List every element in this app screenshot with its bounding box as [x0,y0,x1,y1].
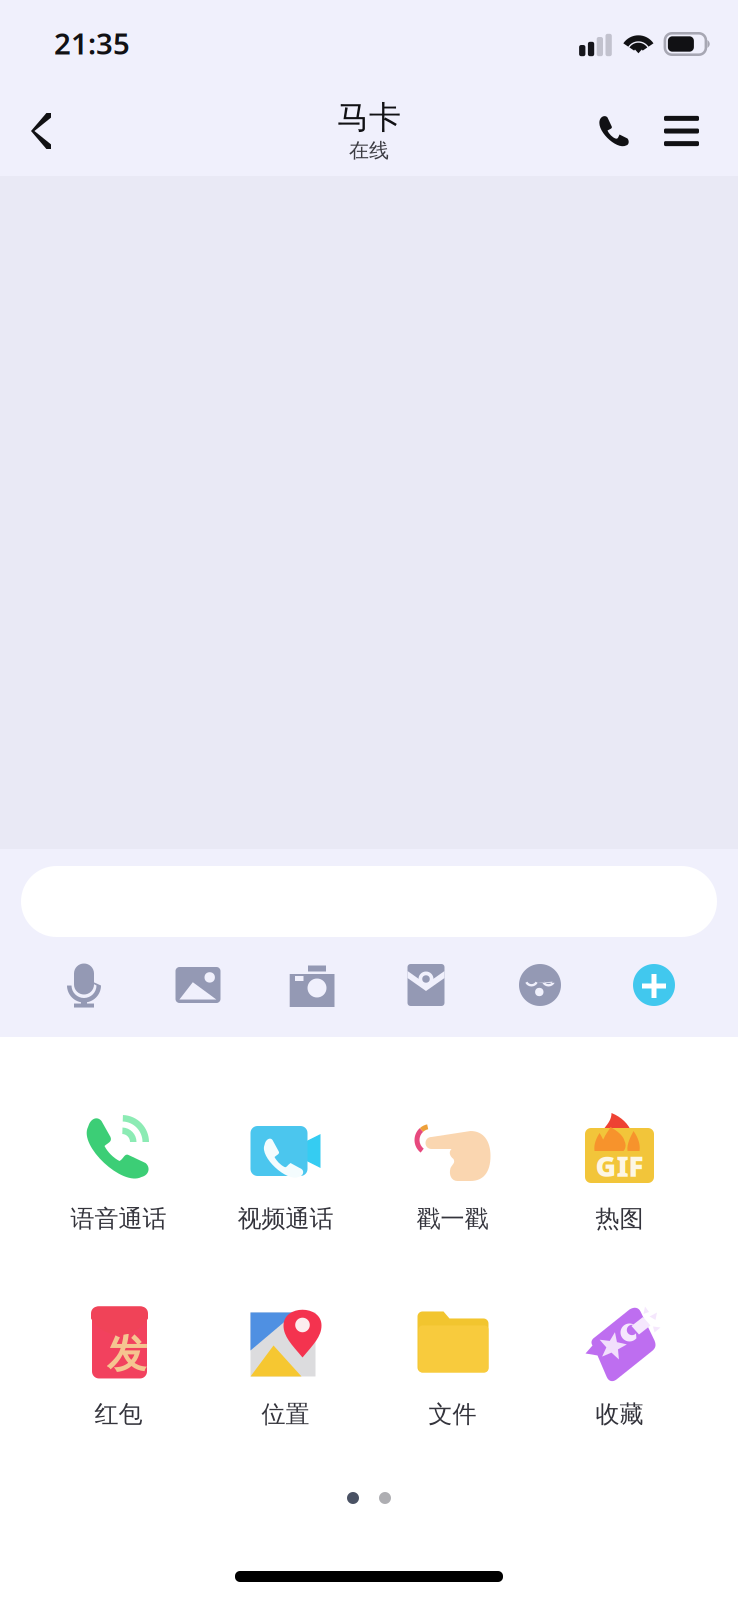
button[interactable]: 位置 [202,1306,369,1429]
staticText: 语音通话 [70,1204,166,1233]
button[interactable]: 收藏 [536,1306,703,1429]
staticText: 发 [107,1329,147,1378]
button[interactable]: 发 [35,1306,202,1429]
staticText: 收藏 [595,1399,643,1429]
staticText: GIF [595,1147,643,1185]
button[interactable]: Stickers [483,957,597,1013]
button[interactable]: 语音通话 [35,1111,202,1233]
staticText: 红包 [94,1399,142,1429]
button[interactable]: Camera [255,957,369,1013]
button[interactable]: Voice call [576,86,644,176]
button[interactable]: Message [0,849,738,937]
button[interactable]: More [597,957,711,1013]
staticText: 戳一戳 [416,1204,488,1233]
button[interactable]: 视频通话 [202,1111,369,1233]
staticText: 21:35 [54,23,130,62]
button[interactable]: Voice message [27,957,141,1013]
button[interactable]: 戳一戳 [369,1111,536,1233]
staticText: 在线 [349,138,389,163]
staticText: 马卡 [337,98,401,137]
staticText: 位置 [261,1399,309,1429]
button[interactable]: Back [0,86,75,176]
button[interactable]: GIF [536,1111,703,1233]
staticText: 热图 [595,1204,643,1233]
button[interactable]: Red packet [369,957,483,1013]
button[interactable]: Photos [141,957,255,1013]
staticText: 视频通话 [237,1204,333,1233]
staticText: 文件 [428,1399,476,1429]
button[interactable]: Menu [644,86,738,176]
button[interactable]: 文件 [369,1306,536,1429]
